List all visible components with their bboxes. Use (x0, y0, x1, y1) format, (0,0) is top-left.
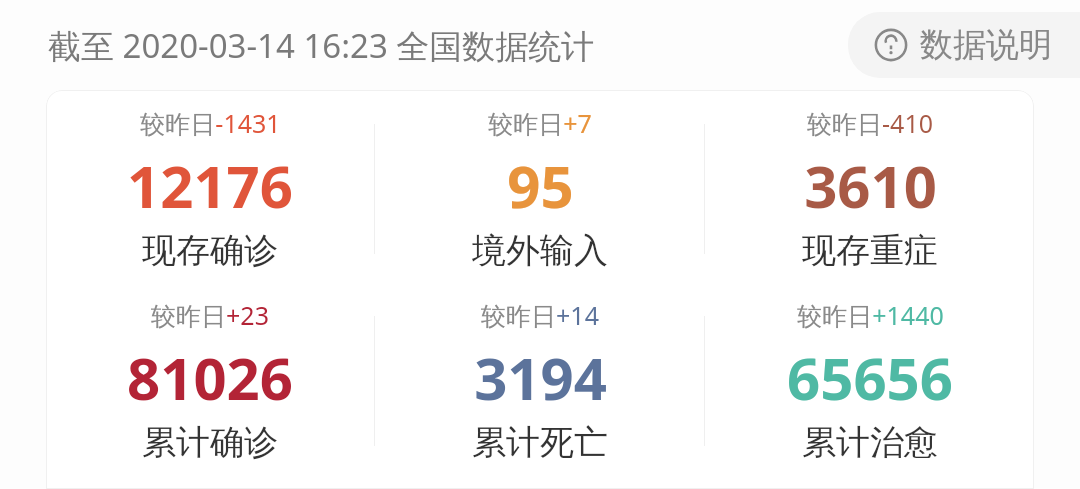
staticText: 较昨日+7 (488, 106, 592, 140)
staticText: 数据说明 (920, 24, 1052, 66)
staticText: 较昨日-1431 (140, 106, 281, 140)
staticText: 累计治愈 (802, 421, 938, 464)
staticText: 95 (507, 146, 574, 225)
button[interactable]: 较昨日+14 (472, 298, 608, 464)
button[interactable]: 较昨日+1440 (787, 298, 953, 464)
staticText: 3610 (804, 146, 937, 225)
staticText: 现存重症 (802, 229, 938, 272)
staticText: 12176 (127, 146, 293, 225)
staticText: 现存确诊 (142, 229, 278, 272)
staticText: 3194 (474, 338, 607, 417)
staticText: 81026 (127, 338, 293, 417)
button[interactable]: 数据说明 (848, 12, 1080, 78)
staticText: 境外输入 (472, 229, 608, 272)
button[interactable]: 较昨日-410 (802, 106, 938, 272)
staticText: 65656 (787, 338, 953, 417)
button[interactable]: 较昨日-1431 (127, 106, 293, 272)
staticText: 较昨日+1440 (797, 298, 944, 332)
staticText: 较昨日+14 (481, 298, 599, 332)
staticText: 累计死亡 (472, 421, 608, 464)
staticText: 较昨日+23 (151, 298, 269, 332)
staticText: 较昨日-410 (807, 106, 933, 140)
staticText: 累计确诊 (142, 421, 278, 464)
button[interactable]: 较昨日+23 (127, 298, 293, 464)
staticText: 截至 2020-03-14 16:23 全国数据统计 (48, 23, 595, 68)
button[interactable]: 较昨日+7 (472, 106, 608, 272)
